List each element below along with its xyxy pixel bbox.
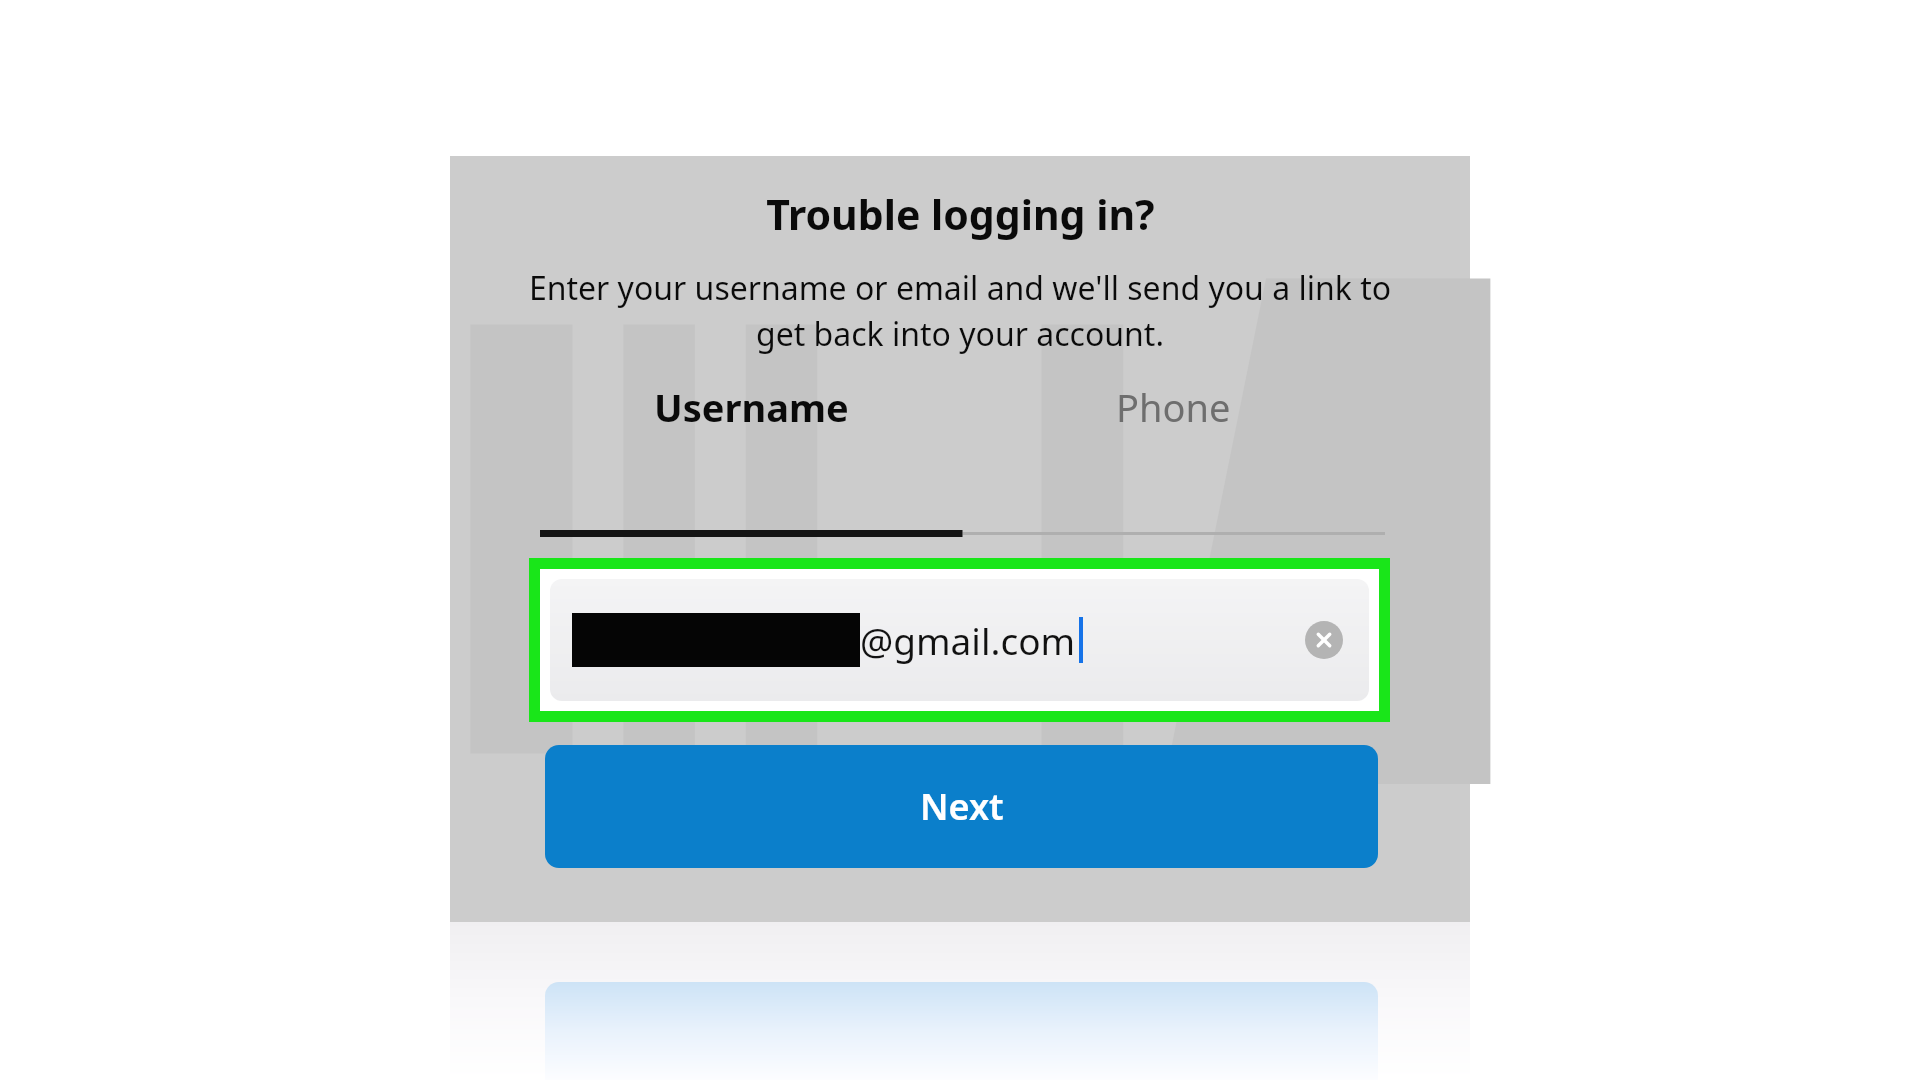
button[interactable]: Username — [540, 362, 962, 452]
button[interactable]: @gmail.com — [550, 579, 1369, 701]
button[interactable]: Phone — [962, 362, 1385, 452]
staticText: Phone — [1116, 381, 1231, 433]
staticText: @gmail.com — [860, 615, 1076, 665]
staticText: Enter your username or email and we'll s… — [510, 266, 1410, 355]
staticText: Next — [920, 782, 1004, 831]
button[interactable]: Next — [545, 745, 1378, 868]
staticText: Trouble logging in? — [766, 186, 1155, 242]
staticText: Username — [654, 381, 849, 433]
button[interactable]: Clear text — [1305, 621, 1343, 659]
